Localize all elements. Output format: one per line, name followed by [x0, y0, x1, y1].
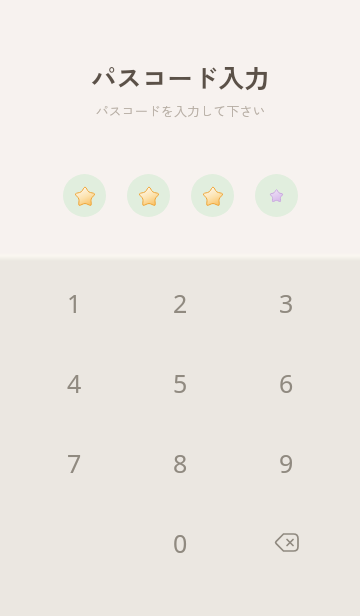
button[interactable]: 5 — [127, 343, 233, 423]
other: Passcode digit 2 — [127, 174, 170, 217]
staticText: 1 — [67, 286, 82, 320]
button[interactable]: 0 — [127, 503, 233, 583]
staticText: 3 — [279, 286, 294, 320]
staticText: 0 — [173, 526, 188, 560]
staticText: 7 — [67, 446, 82, 480]
button[interactable]: Delete — [233, 503, 339, 583]
staticText: 4 — [67, 366, 82, 400]
button[interactable]: 7 — [21, 423, 127, 503]
other: Passcode digit 4 — [255, 174, 298, 217]
staticText: 9 — [279, 446, 294, 480]
staticText: パスコード入力 — [90, 58, 270, 92]
staticText: 8 — [173, 446, 188, 480]
other: Delete — [265, 526, 307, 560]
staticText: 6 — [279, 366, 294, 400]
button[interactable]: 6 — [233, 343, 339, 423]
staticText: 5 — [173, 366, 188, 400]
button[interactable]: 9 — [233, 423, 339, 503]
button[interactable]: 3 — [233, 263, 339, 343]
button[interactable]: 1 — [21, 263, 127, 343]
staticText: パスコードを入力して下さい — [95, 101, 266, 120]
button[interactable]: 4 — [21, 343, 127, 423]
other: Passcode digit 1 — [63, 174, 106, 217]
other: Passcode digit 3 — [191, 174, 234, 217]
button[interactable]: 8 — [127, 423, 233, 503]
button[interactable]: 2 — [127, 263, 233, 343]
staticText: 2 — [173, 286, 188, 320]
